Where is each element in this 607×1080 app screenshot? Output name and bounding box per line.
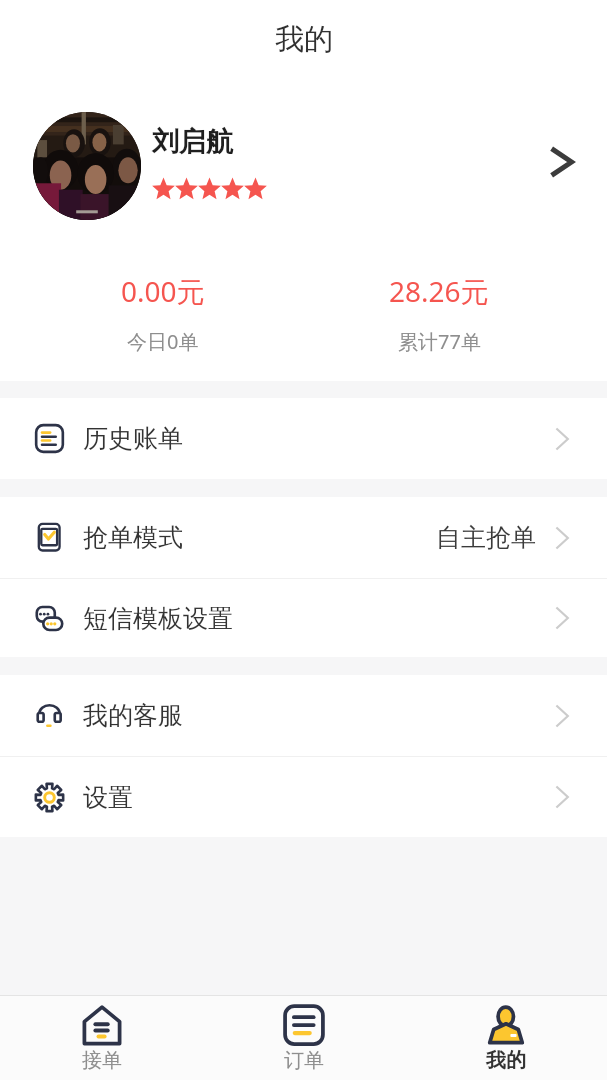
button[interactable]: 订单 bbox=[203, 996, 405, 1080]
staticText: 刘启航 bbox=[152, 125, 233, 159]
staticText: 自主抢单 bbox=[436, 522, 536, 553]
staticText: 订单 bbox=[284, 1048, 324, 1073]
staticText: 短信模板设置 bbox=[83, 603, 233, 634]
button[interactable]: 我的 bbox=[405, 996, 607, 1080]
button[interactable]: 历史账单 bbox=[0, 398, 607, 479]
staticText: 累计77单 bbox=[398, 328, 481, 355]
button[interactable]: 接单 bbox=[0, 996, 203, 1080]
staticText: 28.26元 bbox=[389, 272, 489, 310]
button[interactable]: 短信模板设置 bbox=[0, 579, 607, 657]
other: Profile details bbox=[548, 148, 576, 176]
button[interactable]: 我的客服 bbox=[0, 675, 607, 756]
staticText: 我的 bbox=[275, 21, 333, 58]
staticText: 设置 bbox=[83, 782, 133, 813]
staticText: 历史账单 bbox=[83, 423, 183, 454]
button[interactable]: 刘启航 bbox=[0, 91, 607, 241]
button[interactable]: 设置 bbox=[0, 757, 607, 837]
staticText: 接单 bbox=[82, 1048, 122, 1073]
button[interactable]: 抢单模式 bbox=[0, 497, 607, 578]
staticText: 今日0单 bbox=[127, 328, 199, 355]
staticText: 我的客服 bbox=[83, 700, 183, 731]
staticText: 0.00元 bbox=[121, 272, 205, 310]
staticText: 我的 bbox=[486, 1048, 526, 1073]
staticText: 抢单模式 bbox=[83, 522, 183, 553]
